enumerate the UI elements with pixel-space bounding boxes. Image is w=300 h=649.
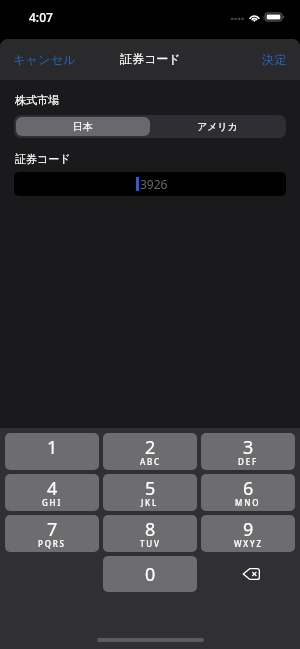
staticText: 2: [145, 435, 156, 460]
staticText: WXYZ: [234, 538, 263, 549]
staticText: GHI: [42, 497, 63, 508]
staticText: 3: [243, 435, 254, 460]
button[interactable]: 1: [5, 433, 99, 470]
button[interactable]: 9: [201, 515, 295, 552]
staticText: キャンセル: [13, 52, 76, 67]
staticText: 株式市場: [15, 93, 59, 107]
staticText: 6: [243, 476, 254, 501]
staticText: 9: [243, 517, 254, 542]
button[interactable]: 3926: [14, 172, 286, 196]
staticText: 4:07: [29, 9, 53, 25]
staticText: 3926: [140, 176, 168, 192]
button[interactable]: 5: [103, 474, 197, 511]
staticText: 1: [47, 435, 58, 460]
button[interactable]: 2: [103, 433, 197, 470]
button[interactable]: 決定: [252, 43, 300, 76]
button[interactable]: アメリカ: [150, 117, 284, 136]
staticText: 5: [145, 476, 156, 501]
button[interactable]: 4: [5, 474, 99, 511]
staticText: 7: [47, 517, 58, 542]
staticText: DEF: [238, 456, 258, 467]
staticText: TUV: [140, 538, 161, 549]
staticText: 証券コード: [15, 152, 71, 166]
staticText: 決定: [262, 52, 287, 67]
button[interactable]: 7: [5, 515, 99, 552]
staticText: PQRS: [38, 538, 66, 549]
staticText: JKL: [141, 497, 159, 508]
button[interactable]: 0: [103, 556, 197, 592]
staticText: 8: [145, 517, 156, 542]
staticText: 日本: [73, 120, 93, 133]
staticText: 0: [145, 562, 156, 587]
button[interactable]: 3: [201, 433, 295, 470]
button[interactable]: 8: [103, 515, 197, 552]
button[interactable]: キャンセル: [0, 43, 86, 76]
staticText: 4: [47, 476, 58, 501]
button[interactable]: Delete: [201, 556, 295, 592]
button[interactable]: 6: [201, 474, 295, 511]
button[interactable]: 日本: [16, 117, 150, 136]
staticText: アメリカ: [197, 120, 238, 133]
staticText: MNO: [235, 497, 261, 508]
staticText: ABC: [140, 456, 161, 467]
staticText: 証券コード: [120, 51, 181, 66]
